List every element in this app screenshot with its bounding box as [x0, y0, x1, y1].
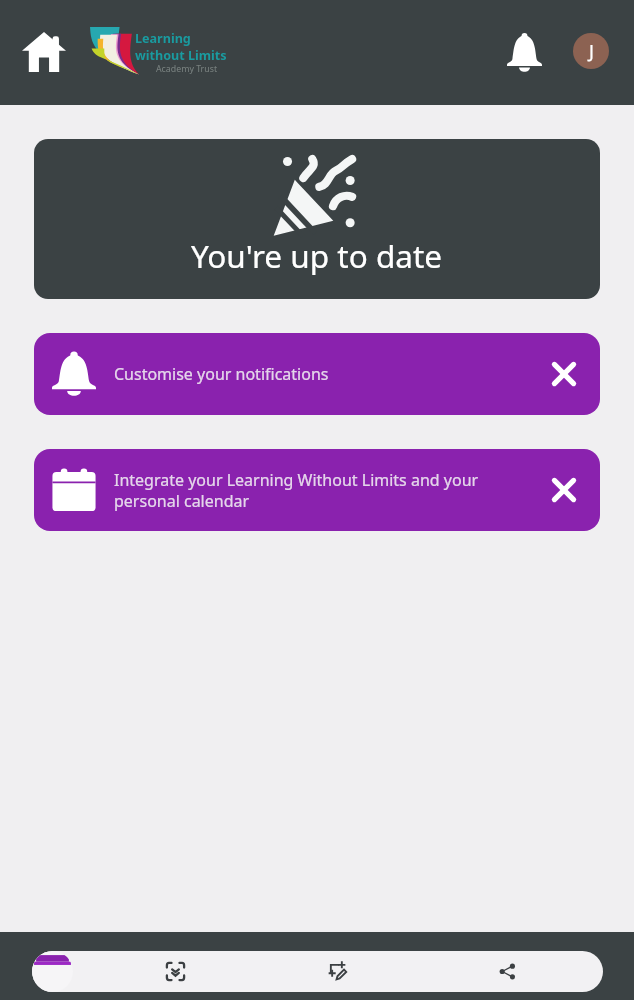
staticText: J: [589, 39, 594, 64]
staticText: Customise your notifications: [114, 363, 538, 385]
staticText: You're up to date: [191, 234, 443, 277]
button[interactable]: Notifications: [498, 26, 550, 78]
button[interactable]: Annotate: [326, 960, 348, 982]
button[interactable]: Home: [18, 26, 70, 78]
button[interactable]: Profile: [573, 33, 609, 69]
button[interactable]: Share: [498, 962, 517, 981]
button[interactable]: Scan: [165, 961, 186, 982]
staticText: Learning: [135, 30, 191, 47]
button[interactable]: You're up to date: [34, 139, 600, 299]
button[interactable]: Tabs: [32, 951, 73, 992]
staticText: without Limits: [135, 47, 227, 64]
button[interactable]: Customise your notifications: [34, 333, 600, 415]
button[interactable]: Integrate your Learning Without Limits a…: [34, 449, 600, 531]
button[interactable]: Dismiss: [538, 348, 590, 400]
staticText: Integrate your Learning Without Limits a…: [114, 469, 538, 512]
staticText: Academy Trust: [156, 63, 218, 75]
button[interactable]: Dismiss: [538, 464, 590, 516]
